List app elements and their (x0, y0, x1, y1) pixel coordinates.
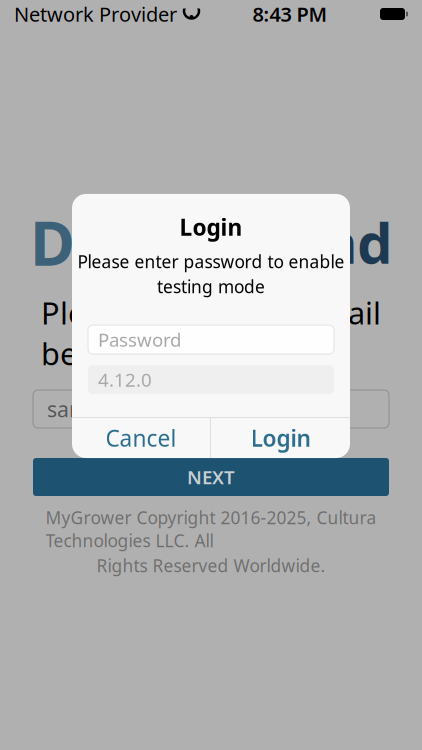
staticText: Rights Reserved Worldwide. (96, 554, 325, 577)
staticText: Password (98, 327, 181, 352)
staticText: Network Provider (14, 1, 177, 27)
staticText: Login (179, 212, 242, 242)
staticText: Please enter password to enable (77, 250, 344, 273)
staticText: testing mode (157, 275, 265, 298)
staticText: NEXT (187, 465, 235, 489)
staticText: DuMond (156, 205, 392, 279)
staticText: sample@email.com (47, 395, 244, 423)
staticText: DM (30, 201, 133, 283)
staticText: MyGrower Copyright 2016-2025, Cultura Te… (45, 506, 376, 552)
button[interactable]: NEXT (33, 458, 389, 496)
button[interactable]: Cancel (72, 418, 210, 458)
button[interactable]: Login (211, 418, 350, 458)
staticText: Login (250, 423, 310, 453)
staticText: Cancel (105, 423, 176, 453)
staticText: 8:43 PM (252, 1, 327, 27)
staticText: Please enter your email below (41, 292, 381, 374)
staticText: 4.12.0 (98, 367, 152, 392)
